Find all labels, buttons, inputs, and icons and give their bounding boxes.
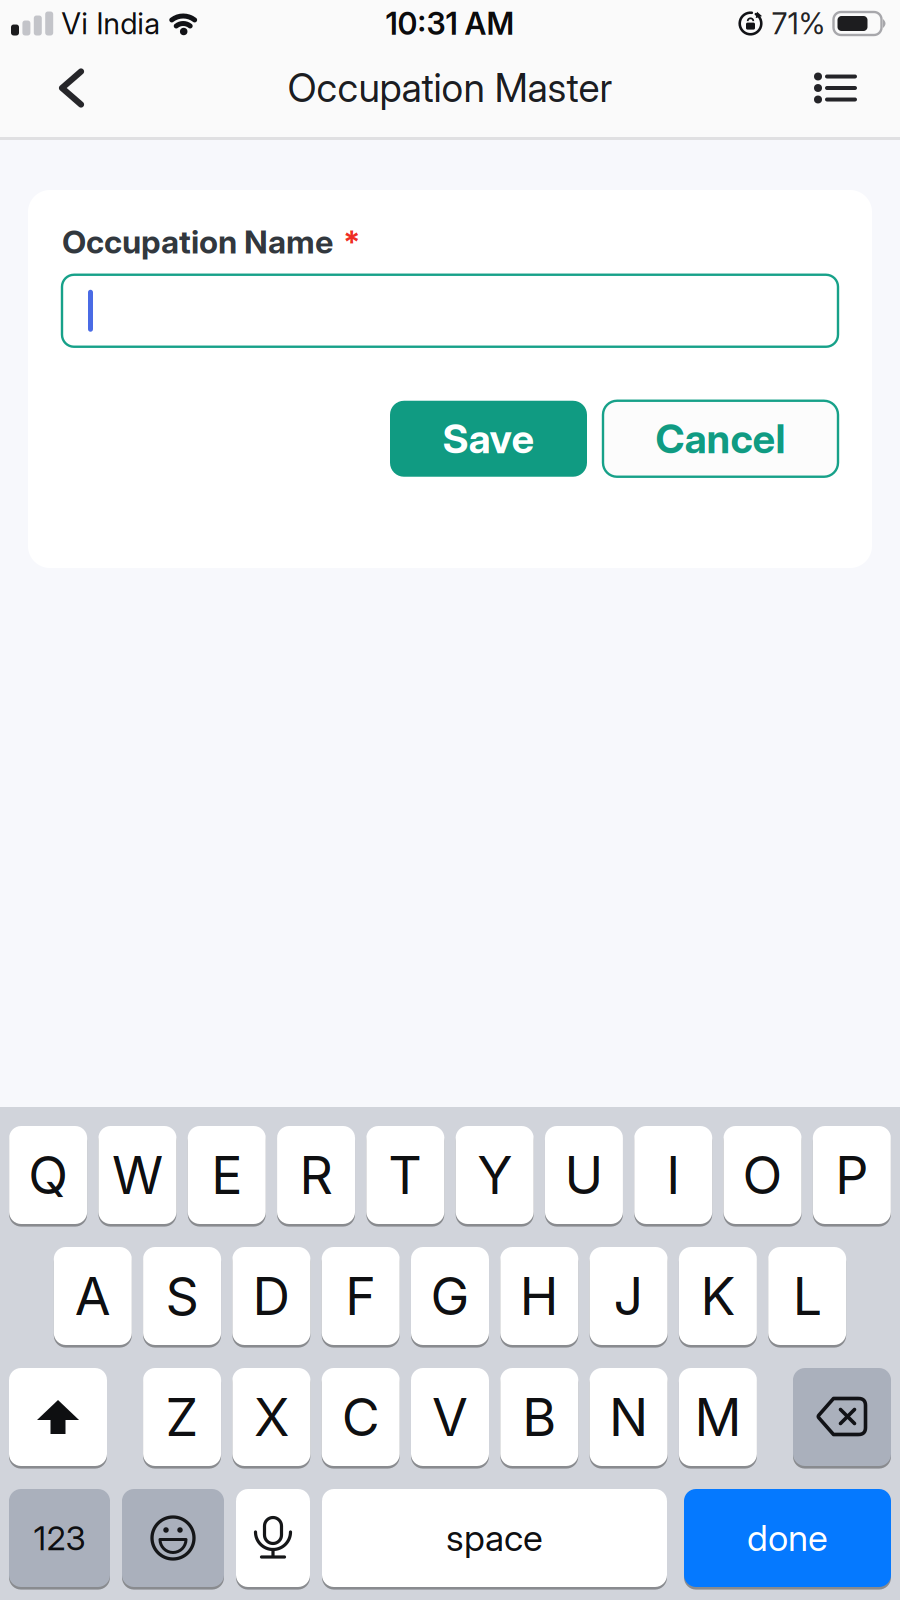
button[interactable]: J xyxy=(590,1247,668,1345)
staticText: Save xyxy=(442,415,534,462)
staticText: P xyxy=(835,1144,868,1206)
button[interactable]: P xyxy=(813,1126,891,1224)
button[interactable]: A xyxy=(54,1247,132,1345)
staticText: U xyxy=(564,1144,603,1206)
staticText: Y xyxy=(477,1144,512,1206)
button[interactable]: K xyxy=(679,1247,757,1345)
button[interactable]: Delete xyxy=(793,1368,891,1466)
staticText: T xyxy=(388,1144,422,1206)
button[interactable]: Y xyxy=(456,1126,534,1224)
staticText: F xyxy=(345,1265,376,1327)
staticText: 71% xyxy=(771,6,825,41)
button[interactable]: Occupation Name xyxy=(62,275,838,347)
staticText: done xyxy=(747,1517,828,1559)
button[interactable]: I xyxy=(634,1126,712,1224)
staticText: C xyxy=(342,1386,380,1448)
staticText: Q xyxy=(28,1144,68,1206)
button[interactable]: Space xyxy=(322,1489,667,1587)
staticText: M xyxy=(694,1386,741,1448)
staticText: A xyxy=(75,1265,111,1327)
button[interactable]: S xyxy=(143,1247,221,1345)
button[interactable]: O xyxy=(723,1126,801,1224)
button[interactable]: W xyxy=(98,1126,176,1224)
button[interactable]: C xyxy=(322,1368,400,1466)
button[interactable]: Done xyxy=(684,1489,891,1587)
button[interactable]: R xyxy=(277,1126,355,1224)
staticText: Cancel xyxy=(655,415,785,462)
button[interactable]: U xyxy=(545,1126,623,1224)
staticText: O xyxy=(742,1144,782,1206)
button[interactable]: Dictation xyxy=(236,1489,310,1587)
staticText: S xyxy=(166,1265,199,1327)
button[interactable]: L xyxy=(768,1247,846,1345)
button[interactable]: Occupation List xyxy=(794,56,900,127)
staticText: W xyxy=(112,1144,163,1206)
button[interactable]: D xyxy=(232,1247,310,1345)
button[interactable]: Emoji xyxy=(122,1489,224,1587)
staticText: Occupation Master xyxy=(287,65,612,111)
staticText: space xyxy=(446,1517,543,1559)
staticText: I xyxy=(666,1144,680,1206)
button[interactable]: N xyxy=(590,1368,668,1466)
button[interactable]: E xyxy=(188,1126,266,1224)
button[interactable]: M xyxy=(679,1368,757,1466)
staticText: Occupation Name xyxy=(62,223,333,261)
button[interactable]: B xyxy=(500,1368,578,1466)
staticText: * xyxy=(343,223,360,261)
staticText: V xyxy=(432,1386,468,1448)
button[interactable]: X xyxy=(232,1368,310,1466)
staticText: G xyxy=(430,1265,469,1327)
staticText: B xyxy=(522,1386,556,1448)
button[interactable]: Q xyxy=(9,1126,87,1224)
staticText: 10:31 AM xyxy=(385,5,514,42)
staticText: R xyxy=(299,1144,332,1206)
staticText: N xyxy=(609,1386,648,1448)
staticText: H xyxy=(520,1265,559,1327)
button[interactable]: F xyxy=(322,1247,400,1345)
button[interactable]: Z xyxy=(143,1368,221,1466)
button[interactable]: Shift xyxy=(9,1368,107,1466)
staticText: Vi India xyxy=(61,6,160,41)
staticText: Z xyxy=(166,1386,199,1448)
staticText: L xyxy=(793,1265,822,1327)
staticText: E xyxy=(211,1144,242,1206)
button[interactable]: H xyxy=(500,1247,578,1345)
staticText: J xyxy=(614,1265,644,1327)
button[interactable]: Cancel xyxy=(603,401,838,477)
staticText: K xyxy=(700,1265,735,1327)
button[interactable]: G xyxy=(411,1247,489,1345)
staticText: X xyxy=(254,1386,289,1448)
button[interactable]: V xyxy=(411,1368,489,1466)
staticText: D xyxy=(252,1265,290,1327)
button[interactable]: T xyxy=(366,1126,444,1224)
staticText: 123 xyxy=(33,1518,85,1558)
button[interactable]: Save xyxy=(390,401,587,477)
button[interactable]: Back xyxy=(0,55,111,128)
button[interactable]: Numbers xyxy=(9,1489,110,1587)
